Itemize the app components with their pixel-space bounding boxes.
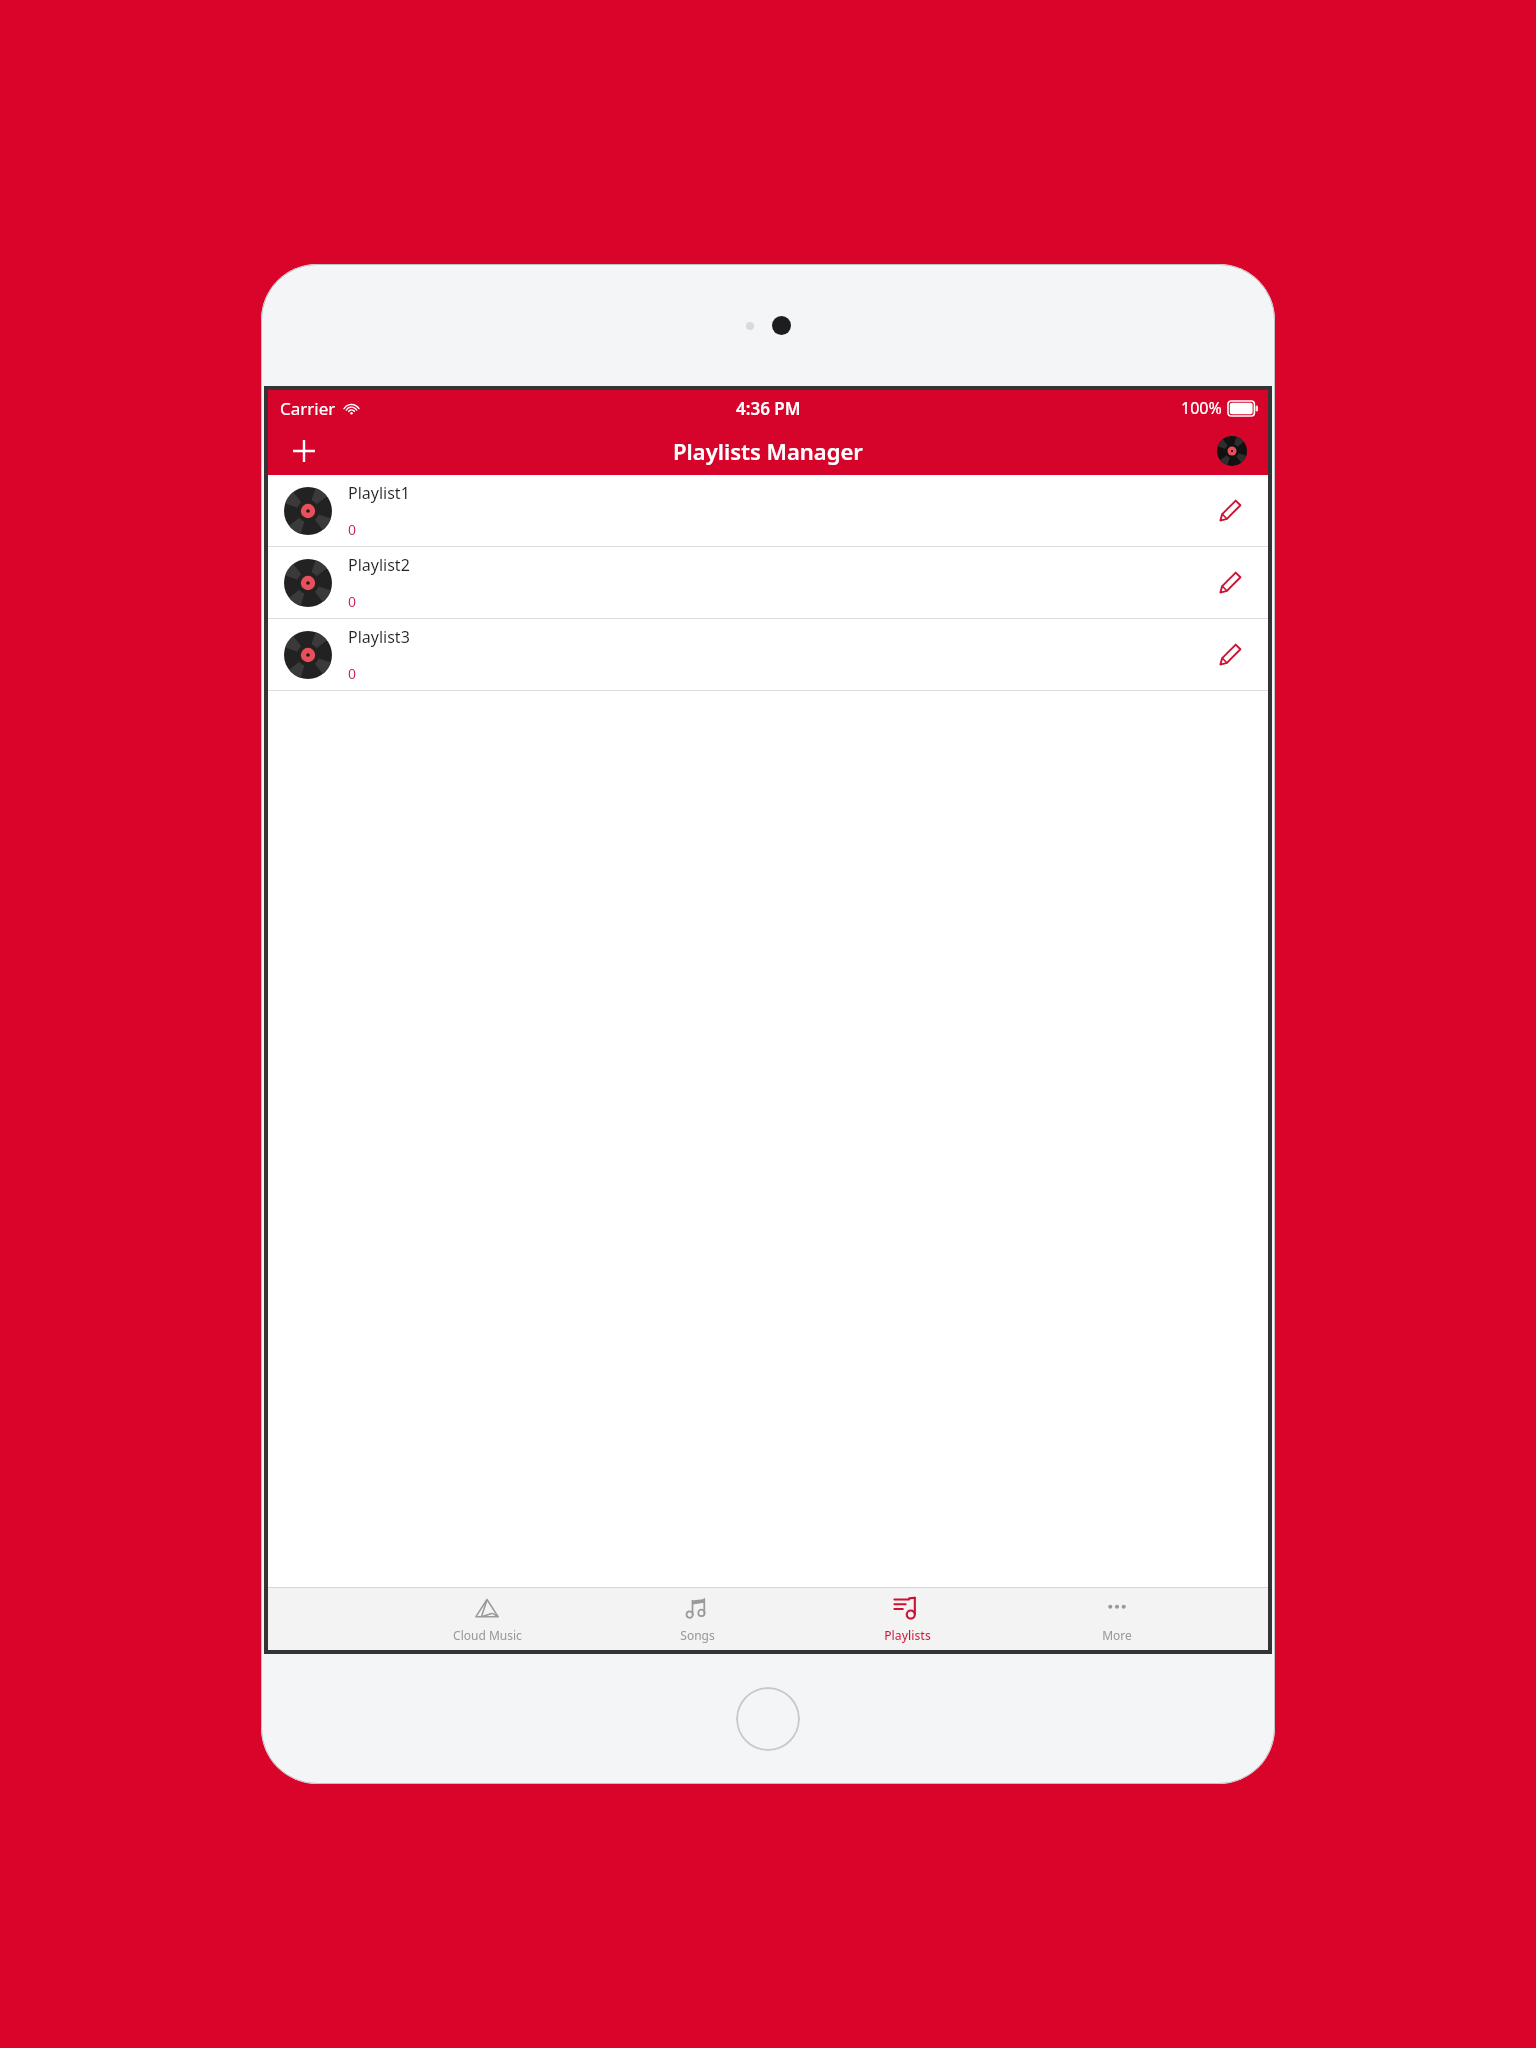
button[interactable]: Songs: [592, 1588, 802, 1650]
staticText: Playlist1: [348, 482, 410, 504]
button[interactable]: Playlists: [802, 1588, 1012, 1650]
button[interactable]: Edit Playlist1: [1208, 489, 1252, 533]
button[interactable]: More: [1012, 1588, 1222, 1650]
button[interactable]: Edit Playlist3: [1208, 633, 1252, 677]
staticText: 100%: [1181, 397, 1222, 419]
staticText: More: [1102, 1627, 1132, 1643]
staticText: 4:36 PM: [736, 397, 801, 420]
staticText: Carrier: [280, 397, 336, 420]
staticText: Playlists: [884, 1627, 931, 1643]
button[interactable]: Edit Playlist2: [1208, 561, 1252, 605]
staticText: 0: [348, 664, 357, 683]
button[interactable]: Playlist3: [268, 619, 1268, 691]
staticText: 0: [348, 520, 357, 539]
button[interactable]: Cloud Music: [382, 1588, 592, 1650]
button[interactable]: Playlist2: [268, 547, 1268, 619]
staticText: Playlist3: [348, 626, 410, 648]
staticText: 0: [348, 592, 357, 611]
staticText: Songs: [680, 1627, 715, 1643]
button[interactable]: Add playlist: [282, 429, 326, 473]
button[interactable]: Playlist1: [268, 475, 1268, 547]
button[interactable]: Now playing: [1212, 431, 1252, 471]
staticText: Cloud Music: [453, 1627, 522, 1643]
staticText: Playlists Manager: [673, 436, 863, 466]
staticText: Playlist2: [348, 554, 410, 576]
